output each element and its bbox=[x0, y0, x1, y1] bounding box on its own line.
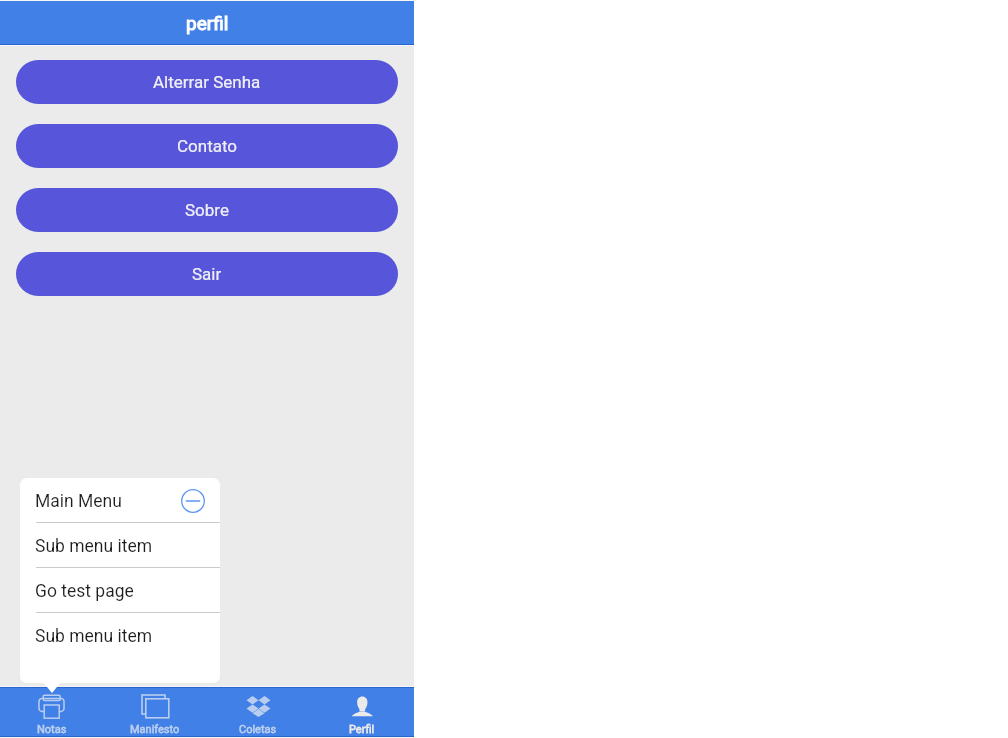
button[interactable]: Sub menu item bbox=[20, 523, 220, 567]
button[interactable]: Perfil bbox=[310, 688, 414, 736]
staticText: Coletas bbox=[239, 723, 277, 736]
staticText: Sair bbox=[192, 264, 222, 284]
button[interactable]: Alterrar Senha bbox=[16, 60, 398, 104]
button[interactable]: Coletas bbox=[206, 688, 310, 736]
button[interactable]: Collapse menu bbox=[179, 487, 207, 515]
button[interactable]: Sobre bbox=[16, 188, 398, 232]
staticText: perfil bbox=[186, 12, 229, 34]
button[interactable]: Sair bbox=[16, 252, 398, 296]
staticText: Manifesto bbox=[130, 723, 180, 736]
staticText: Contato bbox=[177, 136, 238, 156]
staticText: Notas bbox=[37, 723, 67, 736]
button[interactable]: Main Menu bbox=[20, 478, 220, 522]
button[interactable]: Contato bbox=[16, 124, 398, 168]
staticText: Go test page bbox=[35, 581, 134, 602]
staticText: Sub menu item bbox=[35, 626, 153, 647]
button[interactable]: Notas bbox=[0, 688, 103, 736]
staticText: Sobre bbox=[185, 200, 229, 220]
staticText: Perfil bbox=[349, 723, 375, 736]
button[interactable]: Go test page bbox=[20, 568, 220, 612]
button[interactable]: Sub menu item bbox=[20, 613, 220, 657]
staticText: Sub menu item bbox=[35, 536, 153, 557]
button[interactable]: Manifesto bbox=[103, 688, 206, 736]
staticText: Alterrar Senha bbox=[153, 72, 261, 92]
staticText: Main Menu bbox=[35, 491, 122, 512]
